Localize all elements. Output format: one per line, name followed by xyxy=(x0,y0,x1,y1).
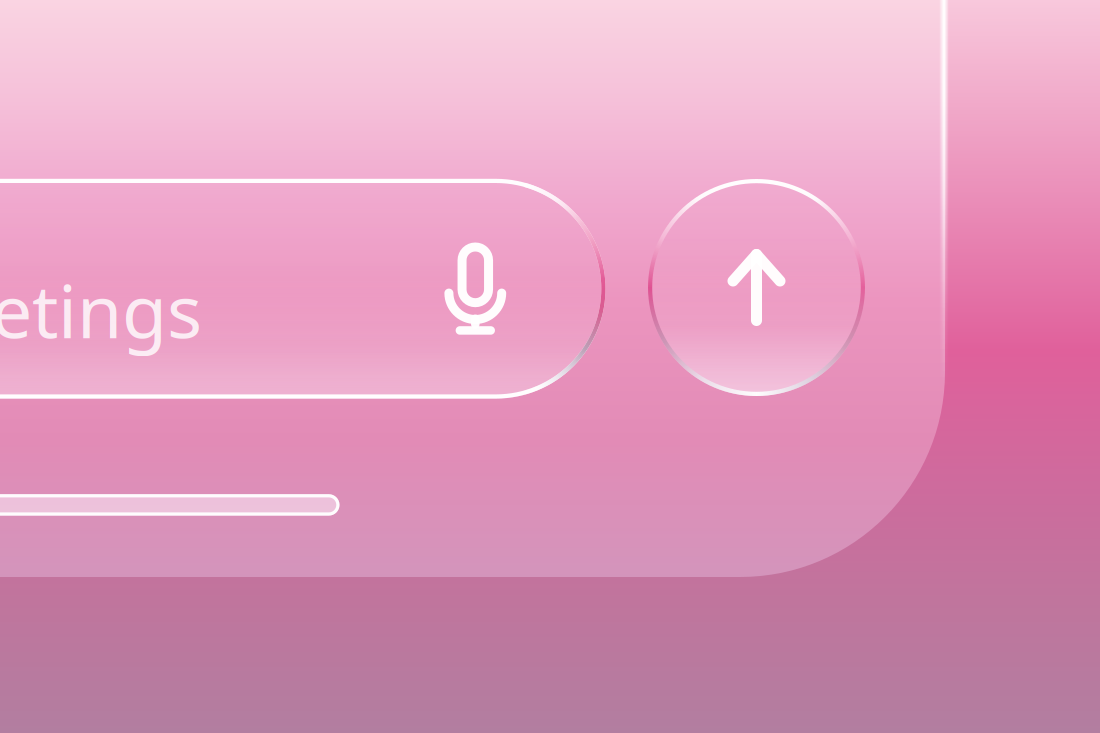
button[interactable] xyxy=(0,179,605,399)
button[interactable]: Dictate xyxy=(445,242,506,334)
staticText: etings xyxy=(0,261,202,358)
button[interactable]: Send xyxy=(648,179,865,396)
